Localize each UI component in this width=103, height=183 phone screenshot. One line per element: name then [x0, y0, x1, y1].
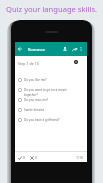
button[interactable]: Statistics: [71, 46, 77, 52]
button[interactable]: Do you miss me?: [18, 97, 74, 107]
staticText: Sweet dreams: [24, 108, 45, 112]
button[interactable]: Back: [17, 46, 23, 52]
staticText: Quiz your language skills.: [6, 4, 98, 14]
button[interactable]: Correct count: [18, 155, 25, 160]
staticText: 0: [23, 155, 25, 160]
button[interactable]: Do you have a girlfriend?: [18, 117, 74, 127]
button[interactable]: Back: [15, 42, 87, 56]
staticText: 0: [35, 155, 37, 160]
button[interactable]: Sweet dreams: [18, 107, 74, 117]
button[interactable]: More options: [78, 46, 84, 52]
staticText: Do you like me?: [24, 78, 47, 82]
staticText: Do you miss me?: [24, 98, 49, 102]
button[interactable]: Add: [74, 60, 78, 64]
button[interactable]: Wrong count: [30, 155, 37, 160]
staticText: Do you want to go on a movie together?: [24, 88, 74, 97]
staticText: 1/10: [76, 155, 84, 160]
staticText: Step 1 de 10: [18, 61, 39, 66]
button[interactable]: Do you like me?: [18, 77, 74, 87]
button[interactable]: People: [62, 46, 68, 52]
staticText: Romance: [28, 47, 46, 52]
staticText: Do you have a girlfriend?: [24, 118, 60, 122]
button[interactable]: Do you want to go on a movie together?: [18, 87, 74, 97]
